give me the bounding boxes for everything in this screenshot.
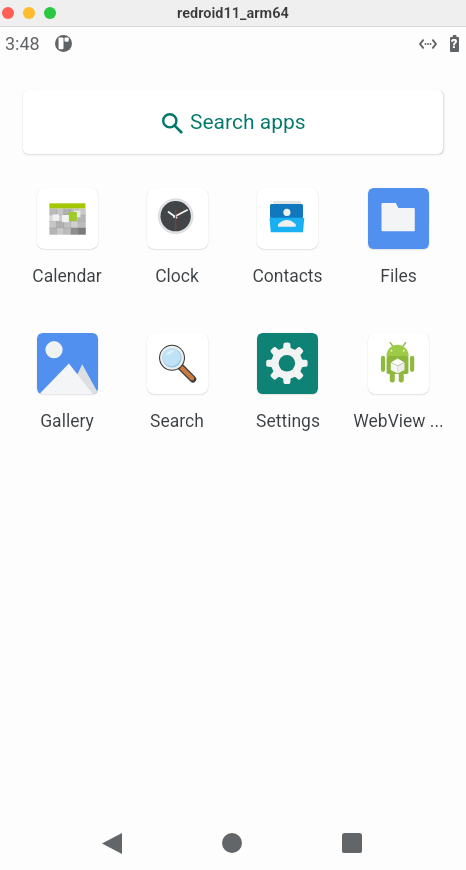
staticText: Contacts: [252, 266, 323, 287]
staticText: Search apps: [190, 110, 306, 135]
staticText: Settings: [256, 411, 320, 432]
staticText: WebView ...: [353, 411, 444, 432]
staticText: Files: [380, 266, 417, 287]
staticText: ?: [451, 36, 458, 51]
other: Profile: [55, 35, 72, 52]
button[interactable]: Search: [122, 333, 232, 432]
staticText: redroid11_arm64: [177, 5, 289, 22]
button[interactable]: WebView ...: [343, 333, 454, 432]
staticText: Search: [150, 411, 204, 432]
other: Battery unknown: [450, 35, 459, 52]
staticText: Gallery: [40, 411, 94, 432]
staticText: 3:48: [5, 33, 40, 54]
button[interactable]: Clock: [122, 188, 232, 287]
button[interactable]: Recent apps: [292, 818, 412, 868]
staticText: Calendar: [32, 266, 102, 287]
button[interactable]: Back: [52, 818, 172, 868]
button[interactable]: Settings: [232, 333, 343, 432]
button[interactable]: Home: [172, 818, 292, 868]
other: ADB connected: [419, 39, 437, 49]
button[interactable]: Contacts: [232, 188, 343, 287]
button[interactable]: Search apps: [23, 90, 443, 154]
button[interactable]: Gallery: [12, 333, 122, 432]
button[interactable]: Files: [343, 188, 454, 287]
button[interactable]: Calendar: [12, 188, 122, 287]
staticText: Clock: [155, 266, 199, 287]
